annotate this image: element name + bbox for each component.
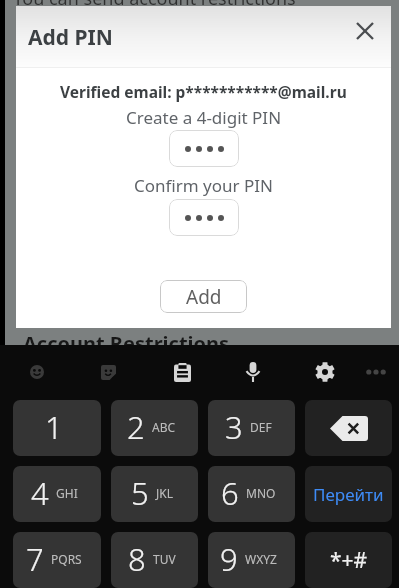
staticText: GHI: [56, 485, 78, 501]
button[interactable]: [169, 199, 239, 236]
staticText: ABC: [152, 419, 176, 435]
button[interactable]: Stickers: [87, 351, 129, 393]
button[interactable]: Перейти: [305, 466, 392, 522]
staticText: 2: [127, 406, 145, 448]
staticText: Add PIN: [28, 23, 113, 52]
button[interactable]: 3: [208, 400, 295, 456]
button[interactable]: 1: [13, 400, 101, 456]
button[interactable]: 2: [111, 400, 198, 456]
staticText: Add: [186, 284, 222, 310]
staticText: MNO: [246, 485, 276, 501]
staticText: PQRS: [51, 551, 82, 567]
button[interactable]: Clipboard: [161, 351, 203, 393]
staticText: WXYZ: [245, 551, 277, 567]
staticText: You can send account restrictions: [13, 0, 296, 11]
button[interactable]: 9: [208, 532, 295, 588]
staticText: 5: [131, 472, 149, 514]
staticText: Create a 4-digit PIN: [126, 106, 282, 129]
staticText: Verified email: p***********@mail.ru: [60, 81, 347, 102]
staticText: 6: [221, 472, 239, 514]
staticText: Confirm your PIN: [134, 174, 273, 197]
button[interactable]: Backspace: [305, 400, 392, 456]
button[interactable]: 8: [111, 532, 198, 588]
button[interactable]: 7: [13, 532, 101, 588]
staticText: DEF: [250, 419, 272, 435]
staticText: 4: [31, 472, 49, 514]
button[interactable]: Close: [348, 14, 382, 48]
staticText: 1: [45, 406, 63, 448]
button[interactable]: 4: [13, 466, 101, 522]
button[interactable]: [169, 130, 239, 167]
button[interactable]: Symbols: [305, 532, 392, 588]
button[interactable]: Add: [160, 280, 247, 313]
staticText: 8: [128, 538, 146, 580]
button[interactable]: More options: [355, 351, 397, 393]
staticText: Перейти: [313, 483, 384, 506]
staticText: *+#: [330, 546, 368, 575]
staticText: JKL: [156, 485, 173, 501]
staticText: 3: [225, 406, 243, 448]
button[interactable]: Voice input: [232, 351, 274, 393]
button[interactable]: 5: [111, 466, 198, 522]
button[interactable]: 6: [208, 466, 295, 522]
staticText: 9: [220, 538, 238, 580]
button[interactable]: Settings: [304, 351, 346, 393]
staticText: TUV: [153, 551, 176, 567]
button[interactable]: Emoji: [16, 351, 58, 393]
staticText: Account Restrictions: [23, 330, 230, 357]
staticText: 7: [26, 538, 44, 580]
